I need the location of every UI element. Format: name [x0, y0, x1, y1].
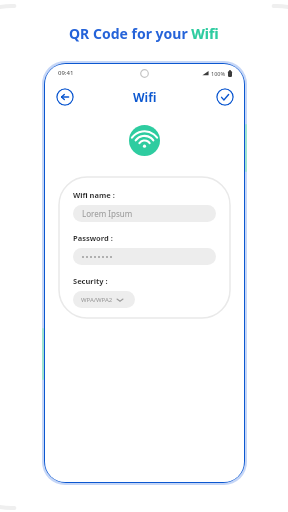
staticText: WPA/WPA2	[81, 296, 113, 304]
staticText: Password :	[73, 233, 113, 243]
button[interactable]	[73, 248, 216, 265]
staticText: Wifi name :	[73, 190, 115, 200]
staticText: 100%	[211, 70, 226, 77]
staticText: Wifi	[133, 89, 157, 105]
button[interactable]: Confirm	[216, 88, 234, 106]
button[interactable]: Wifi icon	[123, 119, 166, 162]
staticText: Security :	[73, 276, 108, 286]
staticText: Lorem Ipsum	[82, 208, 133, 219]
button[interactable]: Back	[56, 88, 74, 106]
button[interactable]: Lorem Ipsum	[73, 205, 216, 222]
staticText: 09:41	[58, 69, 74, 77]
staticText: QR Code for your Wifi	[69, 24, 219, 43]
button[interactable]: Security type	[73, 291, 135, 308]
